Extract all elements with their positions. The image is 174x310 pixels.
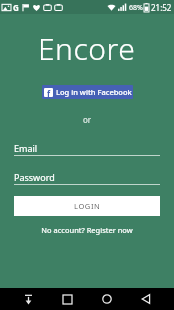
staticText: LOGIN bbox=[74, 201, 101, 211]
button[interactable]: Email bbox=[14, 140, 160, 155]
staticText: f bbox=[47, 88, 51, 97]
staticText: Encore bbox=[38, 28, 136, 69]
button[interactable]: No account? Register now bbox=[35, 223, 139, 237]
staticText: 21:52 bbox=[151, 2, 172, 13]
button[interactable]: Hide keyboard bbox=[17, 288, 39, 310]
staticText: No account? Register now bbox=[41, 225, 133, 235]
staticText: G bbox=[13, 2, 19, 13]
staticText: Log in with Facebook bbox=[56, 87, 132, 97]
button[interactable]: Recent apps bbox=[56, 288, 78, 310]
staticText: Password bbox=[14, 171, 55, 183]
button[interactable]: Password bbox=[14, 169, 160, 184]
button[interactable]: f bbox=[42, 85, 133, 99]
button[interactable]: Back bbox=[135, 288, 157, 310]
button[interactable]: LOGIN bbox=[14, 196, 160, 216]
button[interactable]: Home bbox=[96, 288, 118, 310]
staticText: Email bbox=[14, 142, 38, 154]
staticText: 68% bbox=[129, 3, 143, 13]
staticText: or bbox=[83, 114, 92, 125]
